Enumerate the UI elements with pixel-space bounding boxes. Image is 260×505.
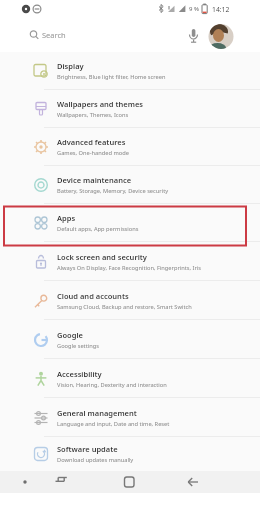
staticText: Advanced features <box>57 137 126 147</box>
staticText: 14:12 <box>212 5 230 14</box>
button[interactable]: General management <box>0 398 260 437</box>
button[interactable]: Search <box>0 18 260 52</box>
staticText: Brightness, Blue light filter, Home scre… <box>57 73 166 81</box>
button[interactable] <box>208 24 234 49</box>
staticText: Device maintenance <box>57 175 132 185</box>
staticText: Wallpapers and themes <box>57 99 144 109</box>
button[interactable]: Wallpapers and themes <box>0 90 260 128</box>
staticText: Samsung Cloud, Backup and restore, Smart… <box>57 303 192 311</box>
button[interactable] <box>110 471 150 493</box>
button[interactable]: Accessibility <box>0 359 260 398</box>
staticText: Apps <box>57 213 76 223</box>
button[interactable]: Cloud and accounts <box>0 281 260 320</box>
button[interactable]: Advanced features <box>0 128 260 166</box>
staticText: Battery, Storage, Memory, Device securit… <box>57 187 169 195</box>
staticText: Cloud and accounts <box>57 291 129 301</box>
staticText: Games, One-handed mode <box>57 149 129 157</box>
staticText: Vision, Hearing, Dexterity and interacti… <box>57 381 167 389</box>
button[interactable] <box>181 24 207 49</box>
staticText: Display <box>57 61 84 71</box>
staticText: Lock screen and security <box>57 252 147 262</box>
staticText: Software update <box>57 444 118 454</box>
staticText: 9 % <box>189 5 199 13</box>
button[interactable]: Apps <box>0 204 260 242</box>
staticText: Search <box>42 30 66 40</box>
staticText: Always On Display, Face Recognition, Fin… <box>57 264 201 272</box>
button[interactable]: Lock screen and security <box>0 242 260 281</box>
staticText: General management <box>57 408 137 418</box>
staticText: Language and input, Date and time, Reset <box>57 420 170 428</box>
staticText: Default apps, App permissions <box>57 225 139 233</box>
button[interactable] <box>42 471 82 493</box>
button[interactable]: Display <box>0 52 260 90</box>
button[interactable] <box>10 471 40 493</box>
staticText: Download updates manually <box>57 456 134 464</box>
button[interactable] <box>173 471 213 493</box>
button[interactable]: Software update <box>0 437 260 471</box>
staticText: Google <box>57 330 83 340</box>
staticText: Google settings <box>57 342 99 350</box>
button[interactable]: Google <box>0 320 260 359</box>
staticText: Wallpapers, Themes, Icons <box>57 111 129 119</box>
staticText: Accessibility <box>57 369 102 379</box>
button[interactable]: Device maintenance <box>0 166 260 204</box>
